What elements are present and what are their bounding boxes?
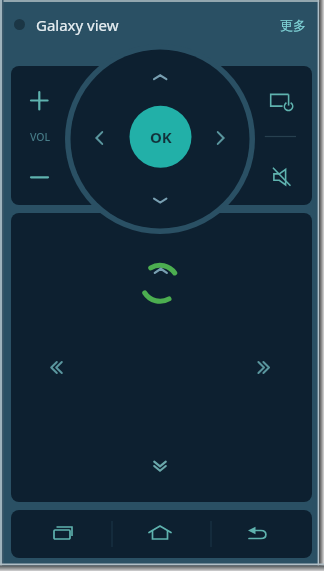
- staticText: OK: [150, 127, 172, 147]
- staticText: Galaxy view: [36, 15, 119, 35]
- staticText: VOL: [30, 130, 51, 144]
- button[interactable]: 更多: [274, 11, 312, 39]
- staticText: 更多: [280, 17, 306, 33]
